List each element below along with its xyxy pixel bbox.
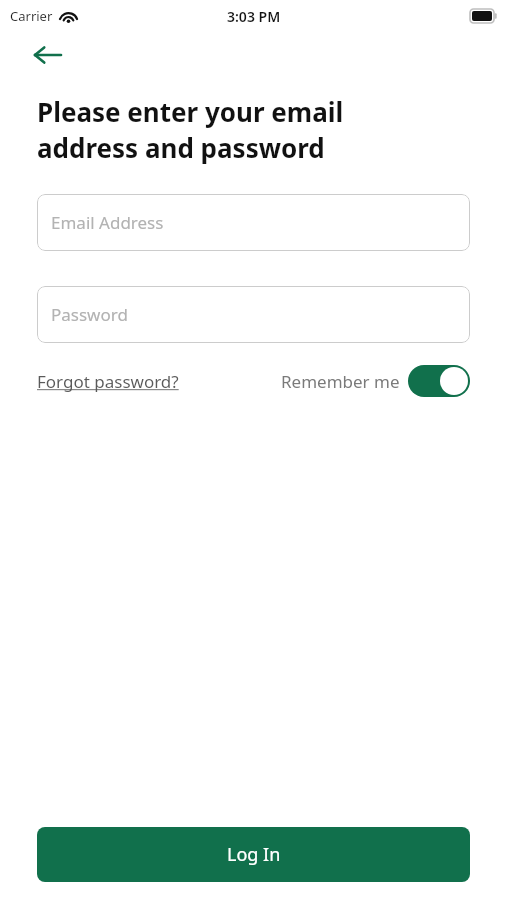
staticText: Remember me [281, 370, 400, 393]
staticText: Forgot password? [37, 370, 179, 393]
button[interactable]: Remember me [281, 365, 470, 397]
staticText: Please enter your email address and pass… [37, 94, 344, 166]
staticText: 3:03 PM [227, 7, 281, 26]
staticText: Email Address [51, 211, 164, 234]
button[interactable]: Back [26, 33, 70, 77]
button[interactable]: Password [37, 286, 470, 343]
button[interactable]: Email Address [37, 194, 470, 251]
staticText: Carrier [10, 7, 53, 25]
staticText: Log In [227, 842, 281, 867]
button[interactable]: Log In [37, 827, 470, 882]
staticText: Password [51, 303, 128, 326]
button[interactable]: Forgot password? [37, 370, 179, 393]
